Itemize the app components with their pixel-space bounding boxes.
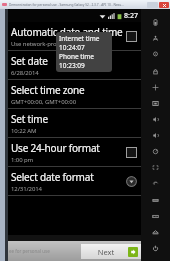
button[interactable]: Next (81, 244, 141, 259)
staticText: Internet time (59, 34, 100, 43)
button[interactable]: Automatic date and time (8, 22, 141, 51)
button[interactable]: Camera (151, 147, 160, 156)
staticText: Select date format (11, 170, 94, 184)
button[interactable]: Network (151, 34, 160, 43)
button[interactable]: Lock (151, 67, 160, 76)
button[interactable]: Resize (151, 163, 160, 172)
staticText: ee for personal use (9, 248, 50, 254)
button[interactable]: Menu (151, 196, 160, 205)
button[interactable]: Location (151, 50, 160, 59)
staticText: Use network-provided time (11, 40, 86, 48)
staticText: 6/28/2014 (11, 69, 39, 77)
staticText: 10:22 AM (11, 127, 37, 135)
staticText: 1:00 pm (11, 156, 34, 164)
button[interactable]: Home (151, 228, 160, 237)
button[interactable]: Volume down (151, 131, 160, 140)
staticText: GMT+00:00, GMT+00:00 (11, 98, 76, 106)
button[interactable]: Screenshot (151, 99, 160, 108)
button[interactable]: Back (151, 179, 160, 188)
button[interactable]: Set time (8, 109, 141, 138)
button[interactable]: Battery (151, 18, 160, 27)
button[interactable]: Rotate (151, 83, 160, 92)
staticText: 10:24:07 (59, 43, 85, 52)
button[interactable]: Volume up (151, 115, 160, 124)
button[interactable]: Use 24-hour format (8, 138, 141, 167)
staticText: 10:23:09 (59, 61, 85, 70)
staticText: 12/31/2014 (11, 185, 42, 193)
staticText: Use 24-hour format (11, 141, 100, 155)
staticText: Select time zone (11, 83, 85, 97)
button[interactable]: Close (159, 2, 169, 8)
button[interactable]: Power (151, 244, 160, 253)
button[interactable]: Set date (8, 51, 141, 80)
staticText: Phone time (59, 52, 95, 61)
staticText: Next (84, 247, 128, 257)
button[interactable]: Select time zone (8, 80, 141, 109)
staticText: Set date (11, 54, 48, 68)
button[interactable]: Select date format (8, 167, 141, 196)
staticText: 8:27 (124, 11, 138, 21)
staticText: Set time (11, 112, 48, 126)
staticText: Automatic date and time (11, 25, 123, 39)
staticText: Demonstration for personal use - Samsung… (9, 3, 124, 7)
button[interactable]: Keyboard (151, 212, 160, 221)
